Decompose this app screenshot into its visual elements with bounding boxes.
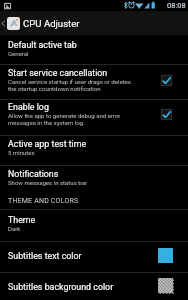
staticText: Enable log <box>8 102 49 112</box>
staticText: Subtitles text color <box>8 251 82 261</box>
staticText: General <box>8 50 29 57</box>
staticText: CPU Adjuster <box>23 18 80 29</box>
staticText: 08:08 <box>167 1 186 10</box>
staticText: Show messages in status bar <box>8 179 88 186</box>
button[interactable]: Notifications <box>0 166 188 195</box>
button[interactable]: Active app test time <box>0 136 188 165</box>
button[interactable]: Subtitles text color <box>0 242 188 272</box>
staticText: Active app test time <box>8 139 87 149</box>
button[interactable]: Default active tab <box>0 35 188 64</box>
staticText: Subtitles background color <box>8 282 114 292</box>
staticText: THEME AND COLORS <box>8 197 79 205</box>
button[interactable]: Navigate up <box>0 11 80 35</box>
staticText: Allow the app to generate debug and erro… <box>8 112 121 126</box>
button[interactable]: Enable log <box>0 100 188 135</box>
staticText: Notifications <box>8 169 59 179</box>
staticText: 5 minutes <box>8 149 35 156</box>
staticText: Cancel service startup if user drags or … <box>8 78 131 92</box>
staticText: Start service cancellation <box>8 68 108 78</box>
button[interactable]: Start service cancellation <box>0 65 188 99</box>
button[interactable]: Subtitles background color <box>0 273 188 300</box>
staticText: Default active tab <box>8 40 77 50</box>
staticText: Dark <box>8 225 21 232</box>
button[interactable]: Theme <box>0 210 188 241</box>
staticText: Theme <box>8 215 36 225</box>
